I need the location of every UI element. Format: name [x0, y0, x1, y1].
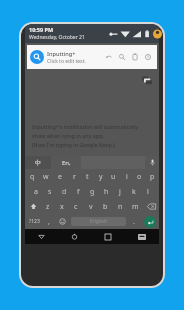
button[interactable]: x [55, 199, 69, 214]
button[interactable]: Undo [102, 47, 115, 67]
button[interactable]: Inputting+ [27, 45, 157, 69]
button[interactable]: Shift [25, 199, 41, 214]
button[interactable]: Back [25, 229, 58, 244]
button[interactable]: 中 [25, 156, 51, 169]
staticText: 中 [35, 159, 42, 167]
staticText: u [111, 172, 116, 182]
staticText: 10:59 PM [29, 26, 54, 33]
button[interactable]: En, [51, 156, 81, 169]
button[interactable]: k [127, 184, 141, 199]
button[interactable]: l [141, 184, 155, 199]
staticText: i [126, 172, 128, 182]
button[interactable]: Search [115, 47, 128, 67]
staticText: Wednesday, October 21 [29, 34, 85, 41]
staticText: p [150, 172, 155, 182]
staticText: k [132, 187, 136, 197]
button[interactable]: ?123 [25, 214, 43, 229]
button[interactable]: a [29, 184, 43, 199]
button[interactable]: g [85, 184, 99, 199]
button[interactable]: Backspace [143, 199, 159, 214]
button[interactable]: Recent apps [91, 229, 125, 244]
staticText: r [73, 172, 76, 182]
button[interactable]: c [69, 199, 83, 214]
staticText: show when tying in any app. [32, 132, 104, 139]
staticText: Inputting+ [47, 50, 76, 58]
staticText: . [133, 217, 135, 226]
button[interactable]: s [43, 184, 57, 199]
staticText: s [48, 187, 52, 197]
button[interactable]: t [81, 169, 94, 184]
staticText: Inputting+'s notification will automatic… [32, 123, 138, 130]
button[interactable]: q [25, 169, 39, 184]
staticText: Click to edit text. [47, 58, 86, 65]
staticText: (Now I'm typing in Google Keep.) [32, 141, 115, 148]
staticText: , [48, 217, 50, 226]
button[interactable]: y [94, 169, 107, 184]
staticText: y [99, 172, 103, 182]
button[interactable]: h [99, 184, 113, 199]
button[interactable]: Emoji [55, 214, 69, 229]
button[interactable]: i [120, 169, 133, 184]
staticText: a [34, 187, 38, 197]
button[interactable]: More [141, 47, 154, 67]
button[interactable]: . [128, 214, 140, 229]
staticText: l [147, 187, 149, 197]
staticText: c [74, 202, 78, 212]
button[interactable]: d [57, 184, 71, 199]
button[interactable]: o [133, 169, 146, 184]
button[interactable]: z [41, 199, 55, 214]
staticText: n [118, 202, 123, 212]
staticText: e [58, 172, 62, 182]
button[interactable]: v [83, 199, 98, 214]
staticText: z [46, 202, 50, 212]
button[interactable]: Keyboard [125, 229, 159, 244]
button[interactable]: Clipboard [128, 47, 141, 67]
staticText: o [137, 172, 142, 182]
staticText: b [103, 202, 108, 212]
button[interactable]: r [67, 169, 81, 184]
staticText: m [132, 202, 139, 212]
button[interactable]: w [39, 169, 53, 184]
staticText: d [62, 187, 67, 197]
staticText: x [60, 202, 64, 212]
staticText: q [30, 172, 35, 182]
staticText: v [89, 202, 93, 212]
button[interactable]: Notes [141, 74, 153, 86]
staticText: f [77, 187, 80, 197]
staticText: j [119, 187, 121, 197]
button[interactable]: b [98, 199, 113, 214]
staticText: ?123 [29, 218, 40, 225]
button[interactable]: , [43, 214, 55, 229]
staticText: English [90, 218, 108, 225]
button[interactable]: e [53, 169, 67, 184]
staticText: En, [62, 159, 71, 167]
button[interactable]: p [146, 169, 159, 184]
staticText: g [90, 187, 95, 197]
staticText: w [43, 172, 49, 182]
button[interactable]: j [113, 184, 127, 199]
staticText: t [86, 172, 89, 182]
button[interactable]: Voice input [145, 156, 159, 169]
button[interactable]: f [71, 184, 85, 199]
button[interactable]: English [71, 217, 126, 226]
staticText: h [104, 187, 109, 197]
button[interactable]: Home [58, 229, 91, 244]
button[interactable]: n [113, 199, 128, 214]
button[interactable]: m [128, 199, 143, 214]
button[interactable]: Enter [144, 216, 156, 228]
button[interactable]: u [107, 169, 120, 184]
